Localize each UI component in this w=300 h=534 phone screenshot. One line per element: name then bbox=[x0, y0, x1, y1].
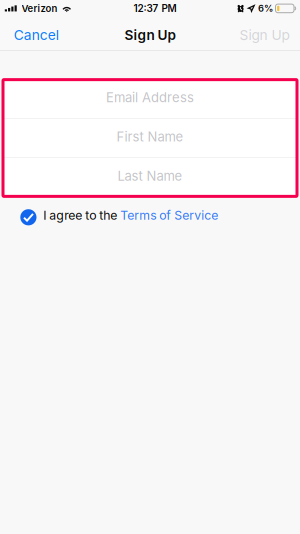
staticText: Sign Up bbox=[124, 27, 175, 43]
staticText: Verizon bbox=[22, 3, 58, 14]
button[interactable]: Terms of Service bbox=[120, 210, 218, 225]
button[interactable]: Agree to terms checkbox bbox=[20, 209, 36, 225]
button[interactable]: Email Address bbox=[3, 80, 297, 118]
staticText: First Name bbox=[116, 129, 183, 145]
staticText: Sign Up bbox=[239, 27, 289, 43]
button[interactable]: Sign Up bbox=[233, 20, 289, 50]
button[interactable]: Last Name bbox=[3, 158, 297, 196]
staticText: I agree to the bbox=[43, 208, 120, 223]
staticText: Cancel bbox=[14, 27, 59, 43]
staticText: Terms of Service bbox=[120, 208, 218, 223]
staticText: Last Name bbox=[117, 168, 182, 184]
button[interactable]: Cancel bbox=[14, 20, 65, 50]
staticText: Email Address bbox=[106, 90, 194, 105]
staticText: 12:37 PM bbox=[133, 2, 176, 14]
staticText: 6% bbox=[258, 3, 273, 14]
button[interactable]: First Name bbox=[3, 119, 297, 157]
